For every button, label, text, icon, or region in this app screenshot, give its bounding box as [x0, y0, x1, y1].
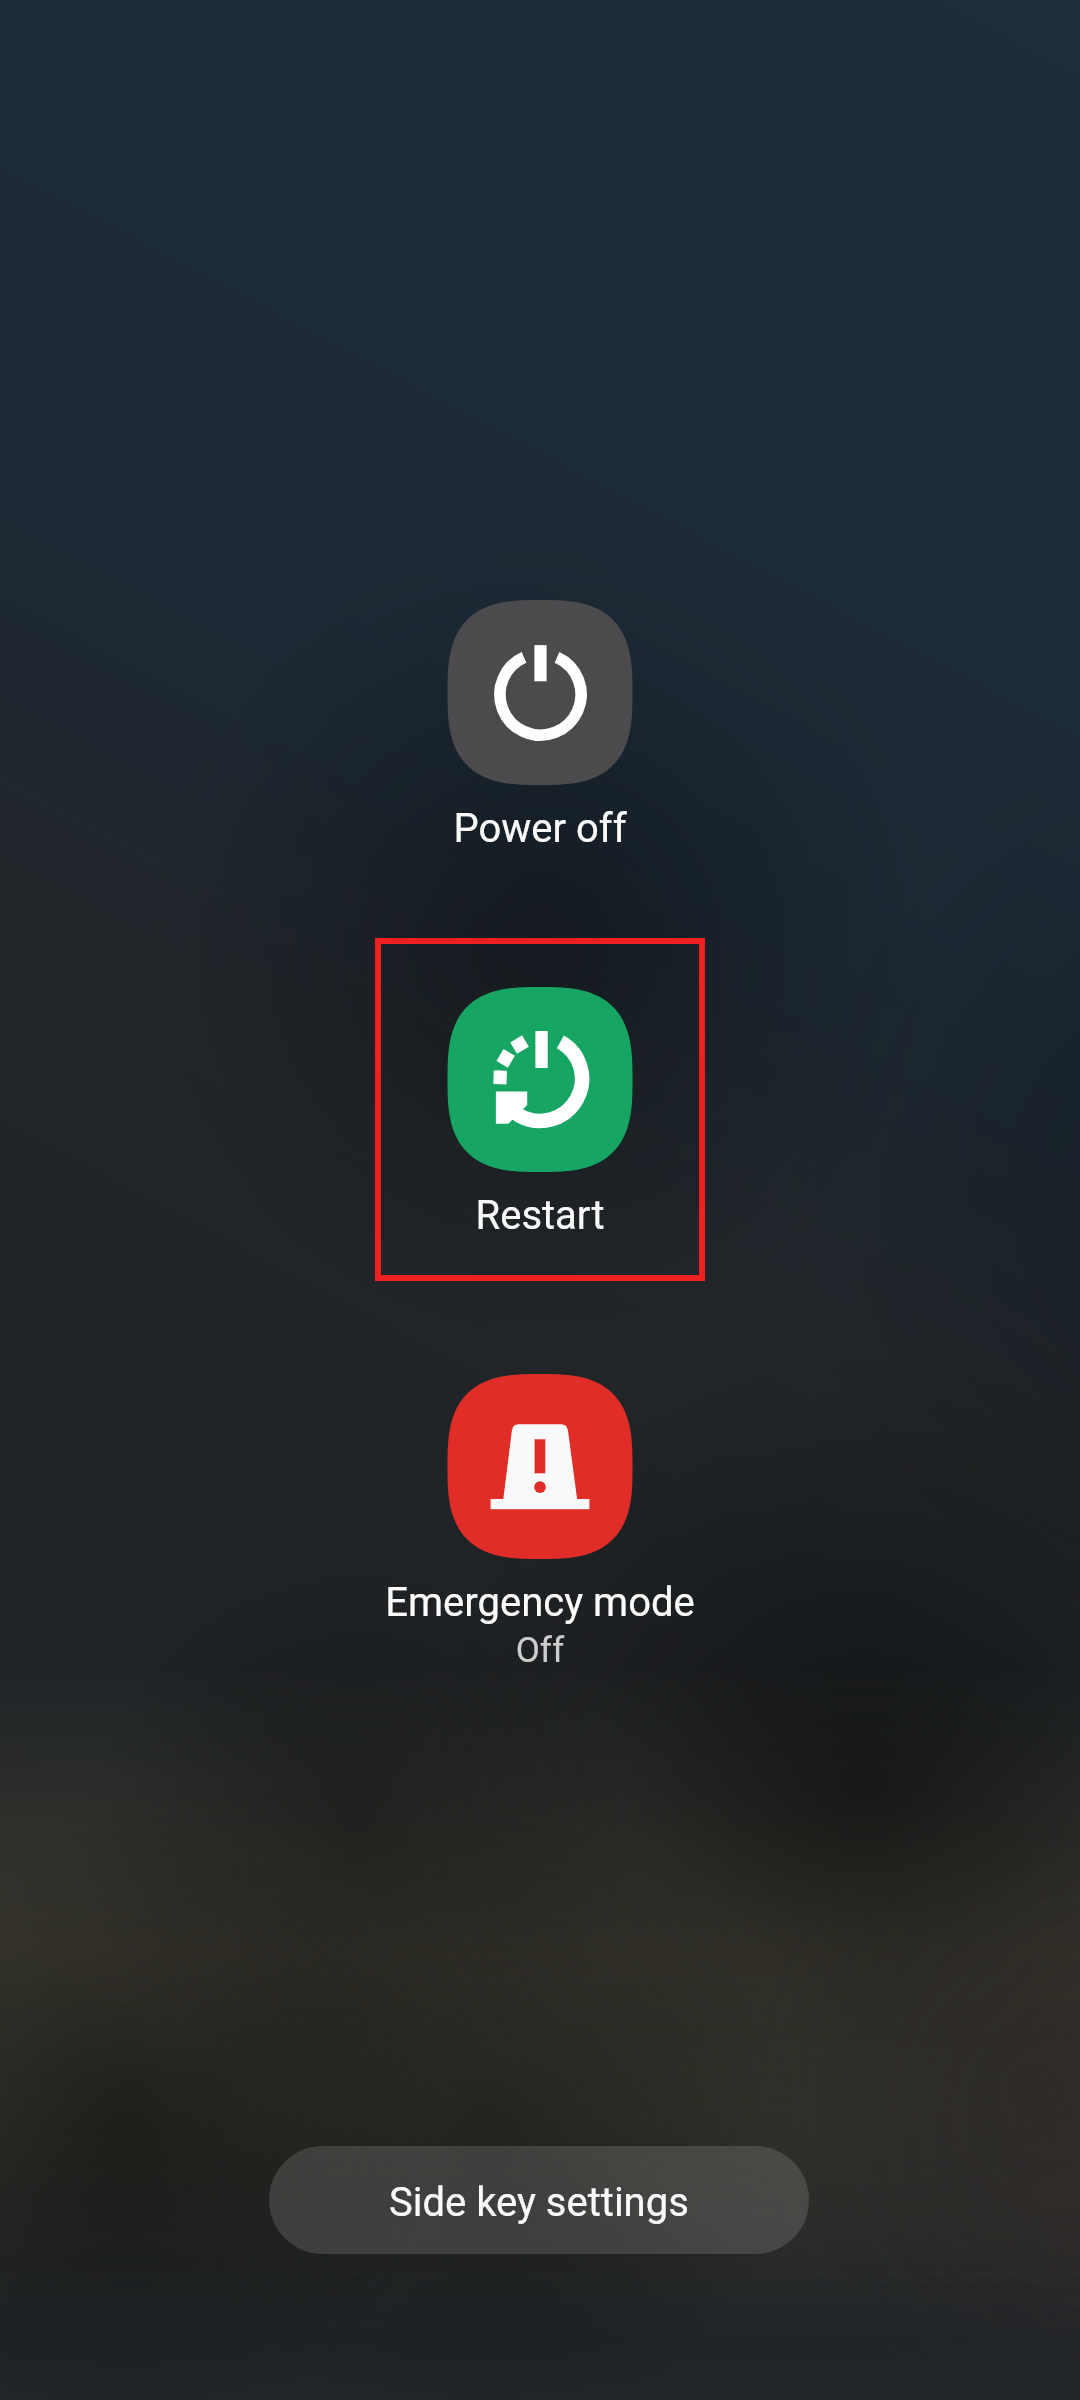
button[interactable]: Side key settings: [269, 2146, 809, 2254]
staticText: Power off: [375, 805, 705, 859]
button[interactable]: Emergency mode: [375, 1325, 705, 1668]
staticText: Restart: [375, 1192, 705, 1246]
staticText: Off: [375, 1630, 705, 1676]
staticText: Side key settings: [389, 2179, 689, 2226]
button[interactable]: Power off: [375, 551, 705, 894]
staticText: Emergency mode: [375, 1579, 705, 1633]
button[interactable]: Restart: [375, 938, 705, 1281]
